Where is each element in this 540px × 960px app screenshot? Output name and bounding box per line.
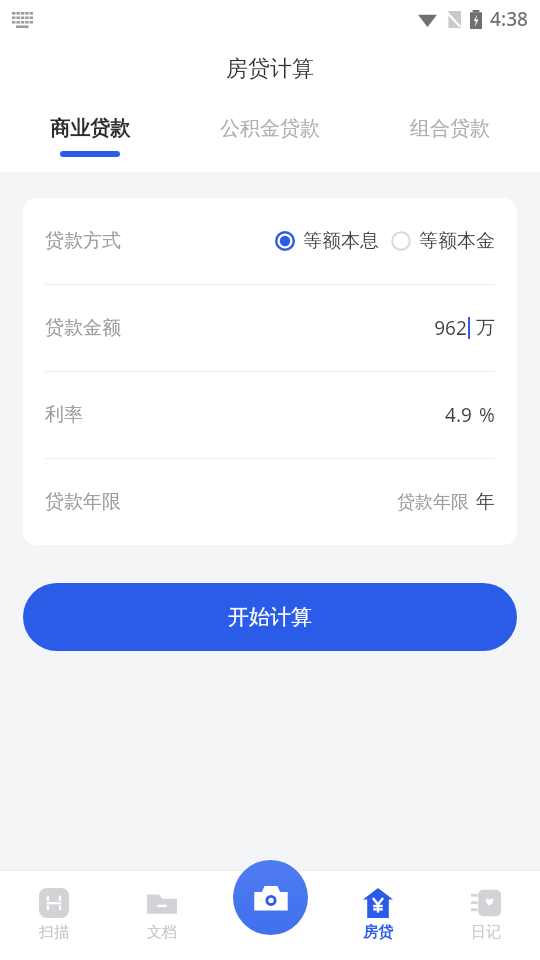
staticText: 贷款金额 <box>45 316 121 340</box>
button[interactable]: 扫描 <box>0 870 108 960</box>
staticText: 组合贷款 <box>410 116 490 141</box>
staticText: 公积金贷款 <box>220 116 320 141</box>
button[interactable]: 开始计算 <box>23 583 517 651</box>
button[interactable]: 贷款年限 <box>45 459 495 545</box>
staticText: 利率 <box>45 403 83 427</box>
button[interactable]: 贷款金额 <box>45 285 495 371</box>
staticText: 等额本息 <box>303 229 379 253</box>
staticText: 等额本金 <box>419 229 495 253</box>
staticText: 扫描 <box>39 923 69 942</box>
staticText: 962 <box>434 315 467 341</box>
staticText: 4:38 <box>490 6 528 32</box>
button[interactable]: 商业贷款 <box>0 100 180 172</box>
button[interactable]: 文档 <box>108 870 216 960</box>
button[interactable]: 等额本金 <box>391 229 495 253</box>
button[interactable]: 组合贷款 <box>360 100 540 172</box>
staticText: 房贷 <box>363 923 393 942</box>
staticText: 房贷计算 <box>226 55 314 83</box>
button[interactable]: 房贷 <box>324 870 432 960</box>
button[interactable]: 日记 <box>432 870 540 960</box>
staticText: 日记 <box>471 923 501 942</box>
button[interactable]: Camera <box>233 860 308 935</box>
staticText: % <box>479 402 495 428</box>
staticText: 万 <box>476 316 495 340</box>
staticText: 贷款方式 <box>45 229 121 253</box>
button[interactable]: 等额本息 <box>275 229 379 253</box>
staticText: 商业贷款 <box>50 116 130 141</box>
button[interactable]: 贷款方式 <box>45 198 495 284</box>
staticText: 开始计算 <box>228 604 312 630</box>
staticText: 年 <box>476 490 495 514</box>
button[interactable]: 利率 <box>45 372 495 458</box>
staticText: 4.9 <box>445 402 472 428</box>
button[interactable]: 公积金贷款 <box>180 100 360 172</box>
staticText: 文档 <box>147 923 177 942</box>
staticText: 贷款年限 <box>397 491 469 514</box>
staticText: 贷款年限 <box>45 490 121 514</box>
